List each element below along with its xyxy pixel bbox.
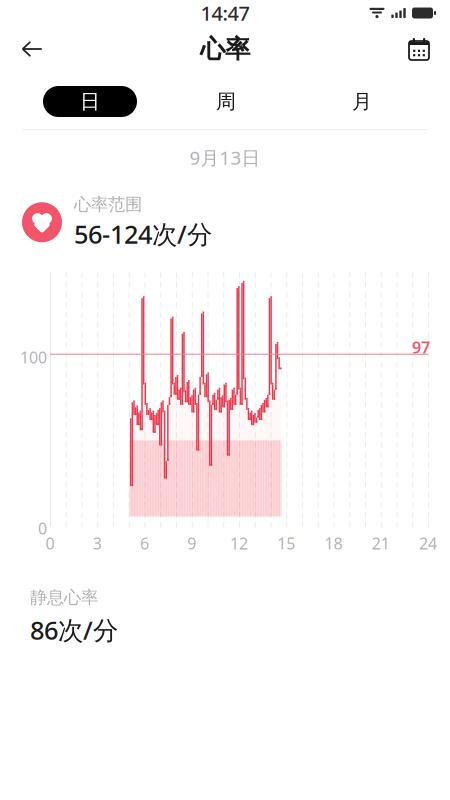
staticText: 周	[216, 89, 236, 114]
staticText: 100	[20, 347, 47, 368]
staticText: 86次/分	[30, 613, 118, 647]
staticText: 24	[419, 533, 437, 554]
staticText: 9月13日	[189, 145, 260, 170]
button[interactable]: 日	[43, 86, 137, 117]
staticText: 3	[93, 533, 102, 554]
staticText: 14:47	[200, 0, 249, 26]
staticText: 月	[352, 89, 372, 114]
staticText: 97	[412, 337, 430, 358]
staticText: 心率范围	[74, 194, 142, 215]
staticText: 心率	[200, 33, 250, 64]
button[interactable]: 选择日期	[396, 26, 442, 72]
staticText: 0	[45, 533, 54, 554]
staticText: 9	[187, 533, 196, 554]
staticText: 6	[140, 533, 149, 554]
staticText: 静息心率	[30, 587, 98, 608]
button[interactable]: 周	[179, 86, 273, 117]
staticText: 12	[230, 533, 248, 554]
staticText: 21	[372, 533, 390, 554]
staticText: 日	[80, 89, 100, 114]
button[interactable]: 返回	[8, 26, 54, 72]
staticText: 0	[38, 518, 47, 539]
staticText: 15	[277, 533, 295, 554]
staticText: 18	[324, 533, 342, 554]
staticText: 56-124次/分	[74, 217, 212, 251]
button[interactable]: 月	[315, 86, 409, 117]
